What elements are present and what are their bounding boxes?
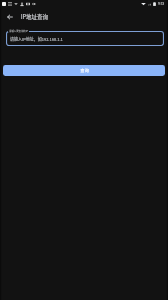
staticText: IP地址查询 bbox=[21, 13, 49, 21]
staticText: 请输入IP地址，如192.168.1.1 bbox=[10, 36, 63, 42]
button[interactable]: 查询 bbox=[3, 65, 165, 76]
button[interactable]: Back bbox=[3, 10, 17, 23]
button[interactable] bbox=[6, 31, 164, 46]
staticText: 请输入要查询的IP bbox=[9, 29, 28, 32]
staticText: 9:13 bbox=[158, 2, 165, 6]
staticText: 查询 bbox=[80, 68, 90, 74]
